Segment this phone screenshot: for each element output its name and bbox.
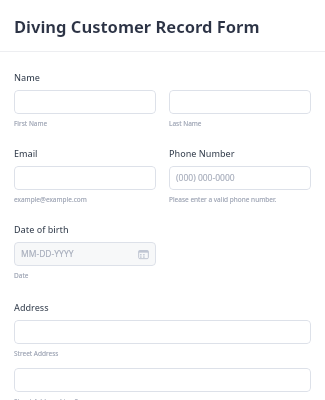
staticText: Please enter a valid phone number. bbox=[169, 195, 277, 204]
button[interactable] bbox=[14, 166, 156, 190]
button[interactable] bbox=[14, 90, 156, 114]
staticText: (000) 000-0000 bbox=[176, 172, 304, 184]
staticText: Date of birth bbox=[14, 223, 69, 235]
button[interactable] bbox=[14, 368, 311, 392]
button[interactable]: MM-DD-YYYY bbox=[14, 242, 156, 266]
staticText: First Name bbox=[14, 119, 48, 128]
staticText: Email bbox=[14, 147, 38, 159]
button[interactable]: Pick date bbox=[138, 249, 149, 260]
staticText: example@example.com bbox=[14, 195, 87, 204]
staticText: Address bbox=[14, 301, 49, 313]
staticText: MM-DD-YYYY bbox=[21, 248, 138, 260]
staticText: Date bbox=[14, 271, 29, 280]
staticText: Phone Number bbox=[169, 147, 235, 159]
staticText: Street Address Line 2 bbox=[14, 397, 79, 400]
button[interactable] bbox=[169, 90, 311, 114]
staticText: Street Address bbox=[14, 349, 59, 358]
button[interactable]: (000) 000-0000 bbox=[169, 166, 311, 190]
staticText: Name bbox=[14, 71, 40, 83]
button[interactable] bbox=[14, 320, 311, 344]
staticText: Last Name bbox=[169, 119, 202, 128]
staticText: Diving Customer Record Form bbox=[14, 15, 260, 37]
